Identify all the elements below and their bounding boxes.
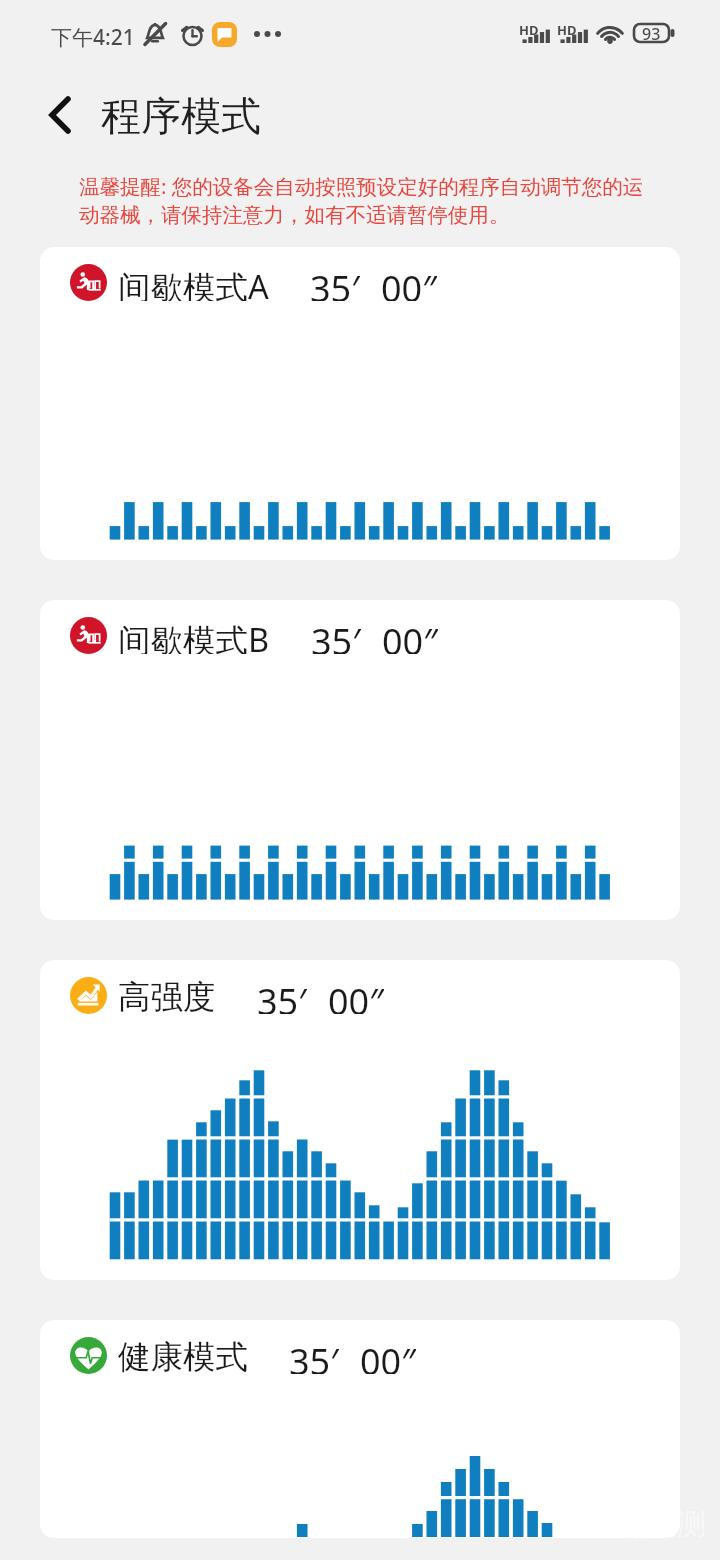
staticText: 间歇模式A: [118, 264, 269, 301]
button[interactable]: 间歇模式B: [40, 600, 680, 920]
staticText: 浪: [628, 1524, 643, 1543]
button[interactable]: 高强度: [40, 960, 680, 1280]
staticText: 下午4:21: [51, 23, 135, 52]
staticText: 35′: [257, 977, 307, 1014]
staticText: 35′: [311, 617, 361, 654]
staticText: 93: [642, 23, 661, 43]
staticText: 间歇模式B: [118, 617, 270, 654]
staticText: 00″: [382, 617, 438, 654]
staticText: 程序模式: [101, 91, 261, 141]
staticText: HD: [557, 21, 577, 39]
staticText: 健康模式: [118, 1337, 248, 1374]
staticText: 00″: [328, 977, 384, 1014]
staticText: 高强度: [118, 977, 216, 1014]
staticText: 众测: [648, 1506, 706, 1543]
staticText: 00″: [381, 264, 437, 301]
button[interactable]: 健康模式: [40, 1320, 680, 1538]
staticText: 35′: [289, 1337, 339, 1374]
button[interactable]: Back: [24, 79, 96, 151]
staticText: HD: [519, 21, 539, 39]
staticText: 00″: [360, 1337, 416, 1374]
staticText: 35′: [310, 264, 360, 301]
button[interactable]: 间歇模式A: [40, 247, 680, 560]
staticText: 温馨提醒: 您的设备会自动按照预设定好的程序自动调节您的运动器械，请保持注意力，…: [79, 172, 645, 228]
